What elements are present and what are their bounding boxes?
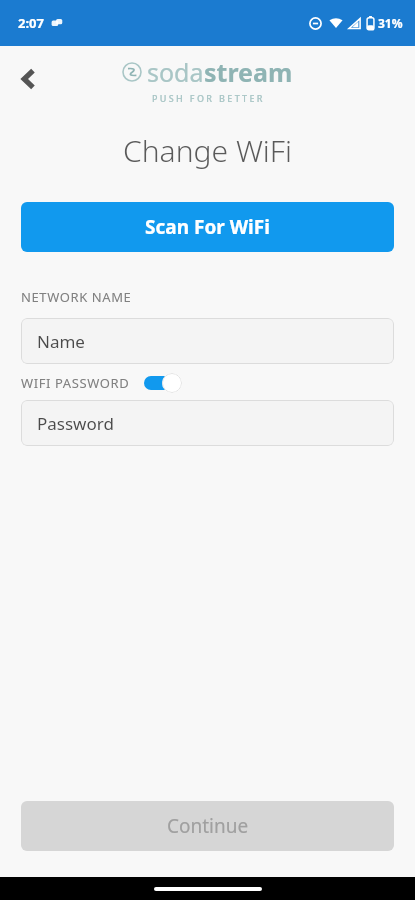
staticText: stream bbox=[204, 55, 293, 89]
staticText: 2:07 bbox=[18, 14, 44, 32]
button[interactable]: Toggle password visibility bbox=[144, 372, 184, 394]
staticText: NETWORK NAME bbox=[21, 288, 132, 306]
staticText: Change WiFi bbox=[0, 130, 415, 171]
staticText: Continue bbox=[167, 813, 249, 839]
staticText: P U S H F O R B E T T E R bbox=[152, 92, 263, 104]
staticText: Scan For WiFi bbox=[145, 214, 270, 240]
button[interactable]: Name bbox=[21, 318, 394, 364]
button[interactable]: Back bbox=[6, 56, 52, 102]
staticText: 31% bbox=[378, 15, 403, 31]
button[interactable]: Scan For WiFi bbox=[21, 202, 394, 252]
staticText: Name bbox=[37, 330, 85, 353]
staticText: Password bbox=[37, 412, 114, 435]
staticText: soda bbox=[147, 55, 204, 89]
staticText: WIFI PASSWORD bbox=[21, 374, 130, 392]
button[interactable]: Password bbox=[21, 400, 394, 446]
button[interactable]: Continue bbox=[21, 801, 394, 851]
